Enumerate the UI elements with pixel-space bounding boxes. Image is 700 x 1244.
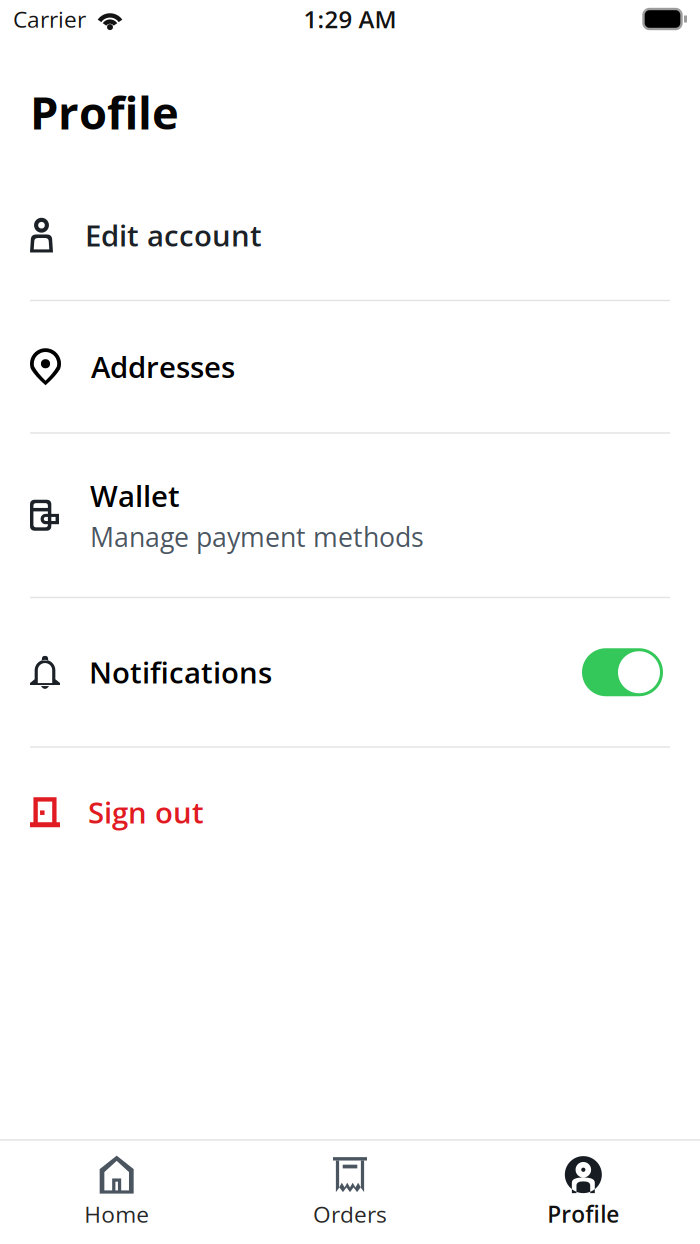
staticText: Home xyxy=(84,1199,149,1229)
button[interactable]: Sign out xyxy=(0,748,700,877)
staticText: Profile xyxy=(30,81,179,143)
button[interactable]: Addresses xyxy=(0,301,700,432)
button[interactable]: Edit account xyxy=(0,171,700,300)
staticText: Addresses xyxy=(91,347,235,387)
button[interactable]: Notifications xyxy=(0,598,700,746)
staticText: Notifications xyxy=(89,652,272,692)
button[interactable]: Home xyxy=(0,1141,233,1244)
staticText: Manage payment methods xyxy=(90,519,424,555)
staticText: Sign out xyxy=(88,792,204,832)
staticText: Orders xyxy=(313,1199,387,1229)
staticText: Edit account xyxy=(85,215,262,255)
button[interactable]: Orders xyxy=(233,1141,467,1244)
button[interactable]: Wallet xyxy=(0,434,700,597)
staticText: Wallet xyxy=(90,476,180,515)
staticText: 1:29 AM xyxy=(303,3,396,35)
staticText: Carrier xyxy=(13,4,86,34)
staticText: Profile xyxy=(547,1199,619,1229)
button[interactable]: Profile xyxy=(467,1141,700,1244)
